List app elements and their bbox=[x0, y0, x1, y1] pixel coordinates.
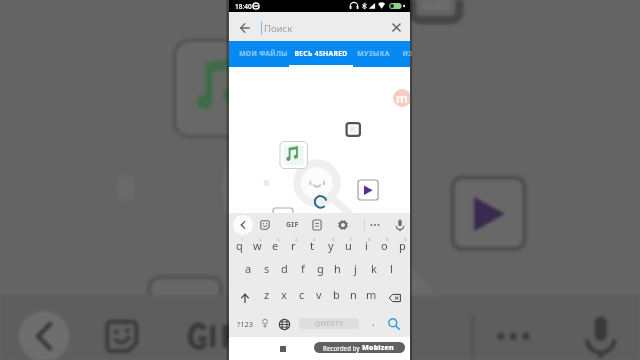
button[interactable]: j bbox=[347, 260, 364, 284]
staticText: 9 bbox=[386, 237, 389, 243]
staticText: t bbox=[310, 238, 314, 253]
staticText: GIF bbox=[286, 220, 299, 230]
staticText: МОИ ФАЙЛЫ bbox=[239, 49, 288, 58]
button[interactable]: Shift bbox=[236, 286, 254, 310]
button[interactable]: Back bbox=[233, 16, 257, 40]
staticText: Mobizen bbox=[362, 343, 394, 353]
staticText: Recorded by bbox=[323, 344, 362, 352]
staticText: 7 bbox=[350, 237, 353, 243]
staticText: f bbox=[301, 261, 305, 276]
button[interactable]: p bbox=[394, 237, 411, 261]
button[interactable]: n bbox=[345, 286, 362, 310]
staticText: h bbox=[334, 261, 341, 276]
button[interactable]: h bbox=[329, 260, 346, 284]
button[interactable]: Clear search bbox=[385, 16, 408, 39]
staticText: 4 bbox=[295, 237, 298, 243]
button[interactable]: Settings bbox=[334, 216, 352, 234]
staticText: s bbox=[264, 261, 270, 276]
button[interactable]: b bbox=[328, 286, 345, 310]
staticText: c bbox=[299, 287, 305, 302]
staticText: i bbox=[365, 238, 368, 253]
staticText: 2 bbox=[259, 237, 262, 243]
staticText: 5 bbox=[313, 237, 316, 243]
button[interactable]: Clipboard bbox=[308, 216, 326, 234]
staticText: d bbox=[281, 261, 288, 276]
button[interactable]: w bbox=[249, 237, 266, 261]
staticText: ?123 bbox=[237, 319, 254, 329]
button[interactable]: Search bbox=[384, 312, 404, 336]
staticText: g bbox=[317, 261, 324, 276]
button[interactable]: f bbox=[294, 260, 311, 284]
staticText: b bbox=[333, 287, 340, 302]
button[interactable]: q bbox=[231, 237, 248, 261]
button[interactable]: Recorded by Mobizen bbox=[314, 342, 405, 353]
button[interactable]: More options bbox=[366, 216, 384, 234]
button[interactable]: Recent apps bbox=[276, 342, 290, 356]
button[interactable]: Voice input bbox=[391, 216, 409, 234]
staticText: a bbox=[245, 261, 252, 276]
staticText: QWERTY bbox=[315, 319, 344, 328]
button[interactable]: . bbox=[366, 312, 380, 336]
button[interactable]: GIF bbox=[282, 216, 302, 234]
staticText: j bbox=[354, 261, 357, 276]
button[interactable]: u bbox=[340, 237, 357, 261]
staticText: m bbox=[366, 287, 377, 302]
button[interactable]: Mobizen recorder bbox=[393, 89, 410, 107]
staticText: p bbox=[399, 238, 406, 253]
button[interactable]: i bbox=[358, 237, 375, 261]
button[interactable]: l bbox=[383, 260, 400, 284]
button[interactable]: МОИ ФАЙЛЫ bbox=[238, 40, 288, 66]
staticText: 0 bbox=[404, 237, 407, 243]
staticText: 1 bbox=[241, 237, 244, 243]
button[interactable]: z bbox=[258, 286, 275, 310]
staticText: m bbox=[396, 90, 408, 106]
button[interactable]: v bbox=[310, 286, 327, 310]
button[interactable]: o bbox=[376, 237, 393, 261]
staticText: w bbox=[253, 238, 262, 253]
button[interactable]: Stickers bbox=[256, 216, 274, 234]
staticText: y bbox=[328, 238, 334, 253]
button[interactable]: a bbox=[240, 260, 257, 284]
staticText: МУЗЫКА bbox=[357, 49, 390, 58]
button[interactable]: QWERTY bbox=[299, 318, 359, 329]
staticText: x bbox=[281, 287, 287, 302]
staticText: . bbox=[372, 315, 375, 329]
staticText: v bbox=[316, 287, 322, 302]
staticText: ИЗ bbox=[402, 49, 413, 58]
staticText: ВЕСЬ 4SHARED bbox=[294, 49, 348, 58]
button[interactable]: ИЗ bbox=[394, 40, 420, 66]
button[interactable]: g bbox=[312, 260, 329, 284]
button[interactable]: Change keyboard language bbox=[275, 312, 293, 336]
staticText: 18:40 bbox=[235, 2, 252, 11]
button[interactable]: e bbox=[267, 237, 284, 261]
button[interactable]: c bbox=[293, 286, 310, 310]
staticText: 8 bbox=[368, 237, 371, 243]
button[interactable]: Emoji bbox=[257, 312, 273, 336]
staticText: l bbox=[390, 261, 393, 276]
staticText: n bbox=[350, 287, 357, 302]
button[interactable]: t bbox=[303, 237, 320, 261]
button[interactable]: r bbox=[285, 237, 302, 261]
button[interactable]: y bbox=[322, 237, 339, 261]
button[interactable]: s bbox=[258, 260, 275, 284]
staticText: u bbox=[345, 238, 352, 253]
staticText: e bbox=[272, 238, 279, 253]
staticText: o bbox=[381, 238, 388, 253]
staticText: q bbox=[236, 238, 243, 253]
button[interactable]: m bbox=[363, 286, 380, 310]
button[interactable]: d bbox=[276, 260, 293, 284]
button[interactable]: Backspace bbox=[386, 286, 404, 310]
staticText: k bbox=[371, 261, 377, 276]
button[interactable]: ВЕСЬ 4SHARED bbox=[292, 40, 350, 66]
button[interactable]: k bbox=[365, 260, 382, 284]
button[interactable]: ?123 bbox=[233, 312, 257, 336]
staticText: 3 bbox=[277, 237, 280, 243]
button[interactable]: МУЗЫКА bbox=[353, 40, 393, 66]
staticText: z bbox=[264, 287, 270, 302]
staticText: r bbox=[291, 238, 296, 253]
staticText: Поиск bbox=[264, 22, 293, 35]
button[interactable]: Back bbox=[233, 215, 253, 235]
button[interactable]: x bbox=[275, 286, 292, 310]
staticText: 6 bbox=[332, 237, 335, 243]
